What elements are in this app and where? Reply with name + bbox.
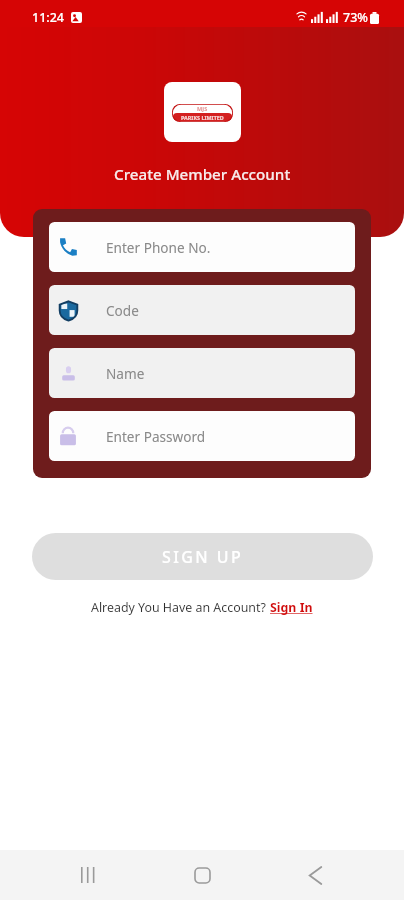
staticText: Code <box>106 301 139 320</box>
staticText: Already You Have an Account? <box>91 599 270 616</box>
staticText: SIGN UP <box>162 546 244 568</box>
button[interactable]: Enter Password <box>49 411 355 461</box>
button[interactable]: Home <box>178 851 226 899</box>
button[interactable]: Enter Phone No. <box>49 222 355 272</box>
button[interactable]: Code <box>49 285 355 335</box>
staticText: Sign In <box>270 599 313 616</box>
button[interactable]: Name <box>49 348 355 398</box>
button[interactable]: Back <box>291 851 339 899</box>
staticText: Enter Password <box>106 427 206 446</box>
button[interactable]: Recent apps <box>65 851 113 899</box>
staticText: PARIKS LIMITED <box>181 114 224 121</box>
staticText: Enter Phone No. <box>106 238 211 257</box>
staticText: Name <box>106 364 145 383</box>
staticText: Create Member Account <box>114 164 291 185</box>
button[interactable]: Sign In <box>270 599 313 616</box>
staticText: 73% <box>343 9 368 26</box>
staticText: MJS <box>197 105 208 113</box>
staticText: 11:24 <box>32 9 65 26</box>
button[interactable]: SIGN UP <box>32 533 373 580</box>
